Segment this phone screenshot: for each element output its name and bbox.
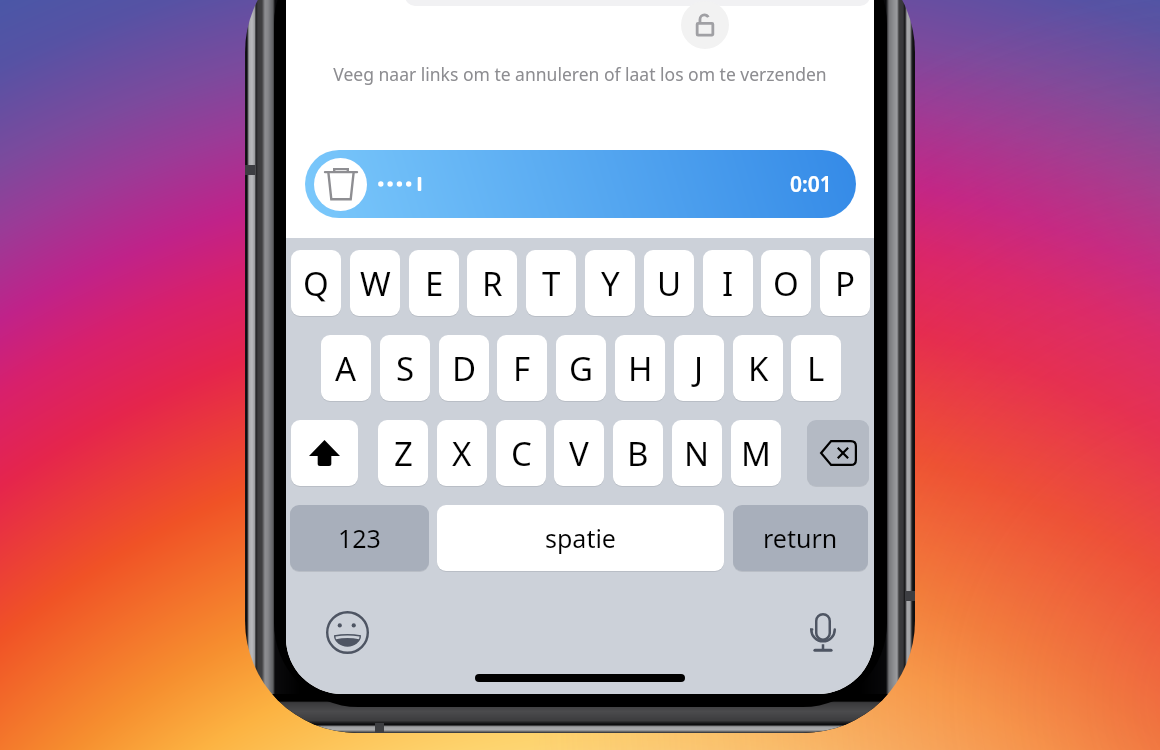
button[interactable]: W (350, 250, 400, 316)
staticText: K (748, 346, 769, 391)
staticText: spatie (545, 521, 616, 555)
button[interactable]: 0:01 (305, 150, 856, 218)
staticText: Y (601, 261, 620, 306)
staticText: F (513, 346, 531, 391)
button[interactable]: U (644, 250, 694, 316)
staticText: Q (303, 261, 329, 306)
button[interactable]: Backspace (807, 420, 869, 486)
staticText: W (360, 261, 391, 306)
button[interactable]: Dictation (797, 607, 848, 658)
button[interactable]: X (437, 420, 487, 486)
staticText: X (452, 431, 472, 476)
staticText: E (425, 261, 444, 306)
button[interactable]: H (615, 335, 665, 401)
button[interactable]: S (380, 335, 430, 401)
staticText: Veeg naar links om te annuleren of laat … (333, 62, 827, 86)
staticText: D (452, 346, 477, 391)
button[interactable]: L (791, 335, 841, 401)
button[interactable]: R (467, 250, 517, 316)
staticText: 0:01 (790, 170, 832, 199)
button[interactable]: spatie (437, 505, 724, 571)
button[interactable]: Lock recording (681, 1, 729, 49)
button[interactable]: V (554, 420, 604, 486)
button[interactable]: A (321, 335, 371, 401)
staticText: J (694, 346, 704, 391)
button[interactable]: F (497, 335, 547, 401)
button[interactable]: Emoji keyboard (322, 607, 373, 658)
staticText: U (657, 261, 682, 306)
staticText: return (763, 521, 838, 555)
button[interactable]: J (674, 335, 724, 401)
button[interactable]: Shift (291, 420, 358, 486)
staticText: R (482, 261, 503, 306)
button[interactable]: E (409, 250, 459, 316)
button[interactable]: D (439, 335, 489, 401)
staticText: B (627, 431, 649, 476)
staticText: M (741, 431, 771, 476)
staticText: N (684, 431, 710, 476)
button[interactable]: P (820, 250, 870, 316)
button[interactable]: Q (291, 250, 341, 316)
staticText: T (542, 261, 561, 306)
staticText: A (335, 346, 357, 391)
staticText: I (722, 261, 734, 306)
staticText: G (569, 346, 594, 391)
button[interactable]: B (613, 420, 663, 486)
button[interactable]: T (526, 250, 576, 316)
staticText: C (511, 431, 532, 476)
button[interactable]: Z (378, 420, 428, 486)
button[interactable]: return (733, 505, 868, 571)
staticText: O (773, 261, 799, 306)
button[interactable]: 123 (290, 505, 429, 571)
button[interactable]: Y (585, 250, 635, 316)
staticText: P (835, 261, 855, 306)
staticText: 123 (338, 521, 381, 555)
staticText: S (396, 346, 415, 391)
button[interactable]: I (703, 250, 753, 316)
staticText: Z (394, 431, 413, 476)
staticText: L (807, 346, 825, 391)
button[interactable]: G (556, 335, 606, 401)
button[interactable]: O (761, 250, 811, 316)
staticText: H (628, 346, 653, 391)
staticText: V (569, 431, 589, 476)
button[interactable]: K (733, 335, 783, 401)
button[interactable]: N (672, 420, 722, 486)
button[interactable]: C (496, 420, 546, 486)
button[interactable]: M (731, 420, 781, 486)
